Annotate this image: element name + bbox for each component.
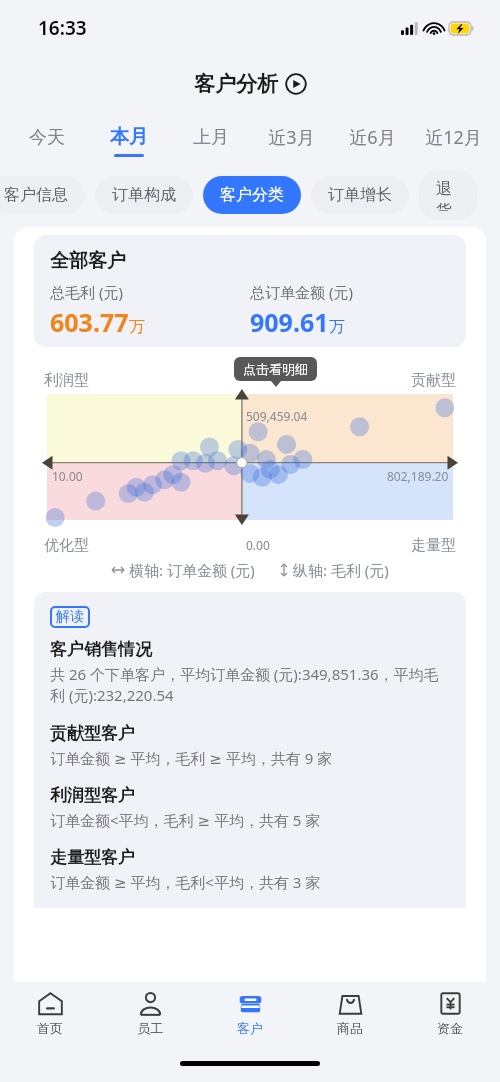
staticText: 近3月 — [268, 125, 315, 150]
staticText: 资金 — [437, 1020, 463, 1036]
button[interactable]: 今天 — [6, 112, 88, 170]
staticText: 万 — [329, 317, 345, 337]
staticText: 客户分析 — [194, 71, 278, 97]
staticText: 优化型 — [44, 536, 89, 555]
button[interactable]: 首页 — [0, 982, 100, 1044]
button[interactable]: 资金 — [400, 982, 500, 1044]
staticText: 今天 — [29, 126, 65, 149]
staticText: 10.00 — [52, 468, 83, 484]
staticText: 909.61 — [250, 305, 329, 339]
staticText: 走量型客户 — [50, 847, 135, 868]
staticText: 员工 — [137, 1020, 163, 1036]
staticText: 客户信息 — [4, 185, 68, 205]
staticText: 本月 — [110, 125, 148, 149]
button[interactable]: 本月 — [88, 112, 170, 170]
staticText: 利润型 — [44, 371, 89, 390]
button[interactable]: 退货 — [419, 170, 477, 220]
staticText: 贡献型客户 — [50, 723, 135, 744]
staticText: 总订单金额 (元) — [250, 282, 353, 302]
staticText: 802,189.20 — [387, 468, 449, 484]
staticText: 客户分类 — [220, 185, 284, 205]
staticText: 509,459.04 — [246, 408, 308, 424]
staticText: 利润型客户 — [50, 785, 135, 806]
button[interactable]: 近6月 — [332, 112, 413, 170]
staticText: 首页 — [37, 1020, 63, 1036]
staticText: 商品 — [337, 1020, 363, 1036]
staticText: 客户 — [237, 1020, 263, 1036]
staticText: 点击看明细 — [243, 361, 308, 377]
button[interactable]: Play — [285, 73, 307, 95]
staticText: 上月 — [193, 126, 229, 149]
staticText: 订单金额 ≥ 平均，毛利 ≥ 平均，共有 9 家 — [50, 748, 333, 768]
staticText: 订单金额<平均，毛利 ≥ 平均，共有 5 家 — [50, 810, 321, 830]
staticText: 近6月 — [349, 125, 396, 150]
button[interactable]: 客户分类 — [203, 176, 301, 214]
staticText: 全部客户 — [50, 249, 126, 273]
button[interactable]: 解读 — [50, 606, 90, 628]
staticText: 贡献型 — [411, 371, 456, 390]
staticText: 横轴: 订单金额 (元) — [129, 560, 255, 580]
staticText: 订单增长 — [328, 185, 392, 205]
button[interactable]: Customer quadrant chart — [14, 357, 486, 582]
staticText: 解读 — [56, 608, 84, 626]
button[interactable]: 上月 — [170, 112, 251, 170]
button[interactable]: 近12月 — [413, 112, 494, 170]
staticText: 603.77 — [50, 305, 129, 339]
staticText: 订单金额 ≥ 平均，毛利<平均，共有 3 家 — [50, 872, 321, 892]
staticText: 16:33 — [38, 15, 87, 41]
button[interactable]: 近3月 — [251, 112, 332, 170]
staticText: 退货 — [436, 179, 460, 211]
button[interactable]: 客户信息 — [0, 176, 85, 214]
staticText: 近12月 — [425, 125, 482, 150]
staticText: 万 — [129, 317, 145, 337]
button[interactable]: 订单构成 — [95, 176, 193, 214]
staticText: 0.00 — [246, 537, 270, 553]
staticText: 走量型 — [411, 536, 456, 555]
staticText: 客户销售情况 — [50, 639, 152, 660]
button[interactable]: 客户 — [200, 982, 300, 1044]
staticText: 订单构成 — [112, 185, 176, 205]
button[interactable]: 员工 — [100, 982, 200, 1044]
button[interactable]: 订单增长 — [311, 176, 409, 214]
staticText: 共 26 个下单客户，平均订单金额 (元):349,851.36，平均毛利 (元… — [50, 664, 450, 706]
staticText: 总毛利 (元) — [50, 282, 123, 302]
button[interactable]: 商品 — [300, 982, 400, 1044]
staticText: 纵轴: 毛利 (元) — [293, 560, 389, 580]
